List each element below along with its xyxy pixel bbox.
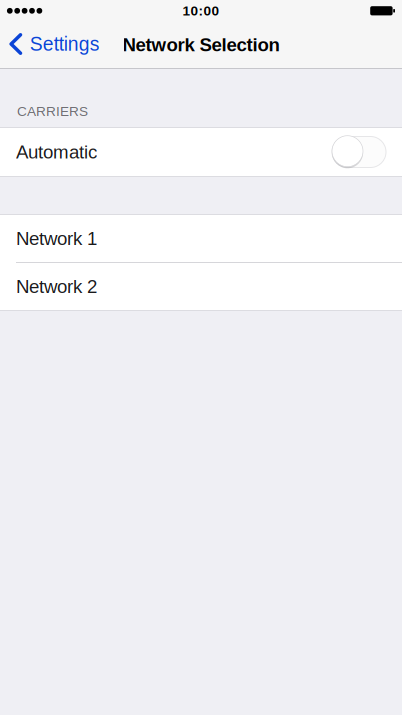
staticText: Settings bbox=[30, 33, 100, 55]
button[interactable]: Network 1 bbox=[0, 215, 402, 262]
button[interactable]: Automatic bbox=[0, 128, 402, 176]
staticText: CARRIERS bbox=[17, 104, 88, 119]
button[interactable]: Network 2 bbox=[0, 263, 402, 310]
staticText: 10:00 bbox=[182, 3, 219, 18]
staticText: Network 1 bbox=[16, 228, 97, 249]
button[interactable]: Settings bbox=[0, 25, 110, 63]
staticText: Network Selection bbox=[122, 34, 279, 55]
staticText: Automatic bbox=[16, 142, 97, 162]
staticText: Network 2 bbox=[16, 276, 97, 297]
